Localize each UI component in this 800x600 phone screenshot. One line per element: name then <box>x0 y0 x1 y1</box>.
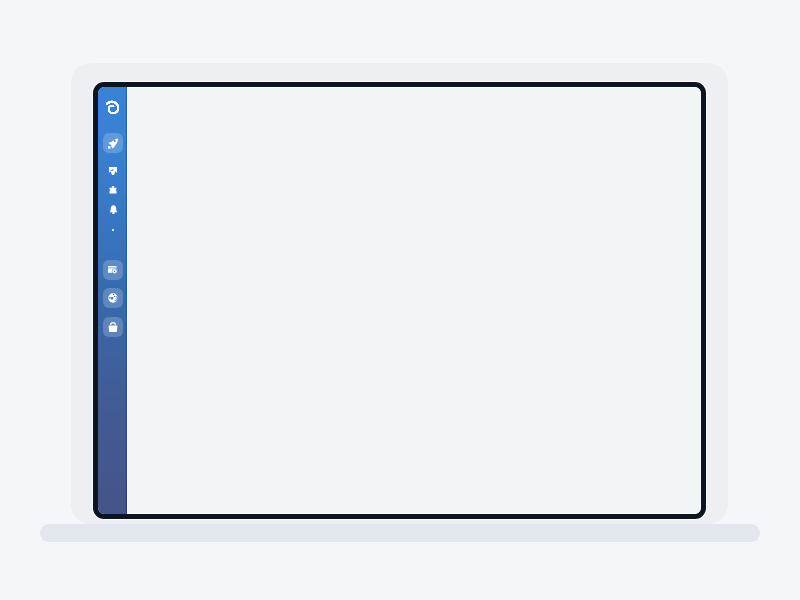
button[interactable]: Work <box>103 180 123 200</box>
button[interactable]: Bookmarks <box>103 161 123 181</box>
button[interactable]: Notifications <box>103 199 123 219</box>
button[interactable]: More <box>103 220 123 240</box>
button[interactable]: Explore <box>103 288 123 308</box>
button[interactable]: Shop <box>103 317 123 337</box>
button[interactable]: Schedule <box>103 260 123 280</box>
button[interactable]: Home <box>104 100 121 117</box>
button[interactable]: Launch <box>103 133 123 153</box>
